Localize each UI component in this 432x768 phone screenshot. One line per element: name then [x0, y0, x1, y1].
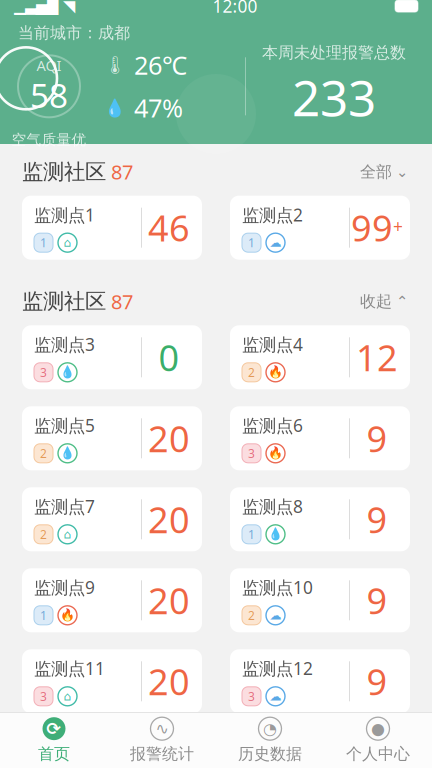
staticText: 当前城市：成都 [18, 23, 130, 43]
staticText: 1 [248, 526, 255, 542]
button[interactable]: 监测点5 [22, 406, 202, 470]
staticText: ⟳ [46, 719, 61, 738]
staticText: 监测点9 [34, 576, 95, 599]
button[interactable]: 全部 [358, 158, 410, 186]
staticText: + [393, 215, 403, 238]
staticText: 💧 [60, 446, 75, 460]
staticText: 监测社区 [22, 159, 106, 185]
staticText: ⌃ [396, 293, 408, 310]
button[interactable]: 监测点6 [230, 406, 410, 470]
button[interactable]: 监测点9 [22, 568, 202, 632]
staticText: 3 [40, 688, 47, 704]
staticText: ● [371, 720, 385, 738]
staticText: 监测点2 [242, 203, 303, 226]
staticText: ☁ [269, 236, 281, 249]
staticText: 🌡 [104, 55, 126, 75]
staticText: 历史数据 [238, 744, 302, 764]
staticText: 🔥 [268, 365, 283, 379]
staticText: 233 [292, 64, 376, 130]
button[interactable]: 监测点11 [22, 649, 202, 713]
staticText: 报警统计 [130, 744, 194, 764]
staticText: 个人中心 [346, 744, 410, 764]
button[interactable]: 监测点2 [230, 196, 410, 260]
staticText: 3 [40, 364, 47, 380]
staticText: 20 [148, 495, 190, 543]
button[interactable]: ◔ [216, 715, 324, 765]
staticText: 收起 [360, 292, 392, 311]
staticText: 监测点3 [34, 333, 95, 356]
staticText: 💧 [60, 365, 75, 379]
button[interactable]: 收起 [358, 288, 410, 315]
staticText: 2 [40, 445, 47, 461]
staticText: ☁ [269, 689, 281, 703]
staticText: 12 [356, 333, 398, 381]
staticText: ⌂ [63, 236, 71, 249]
staticText: 监测点12 [242, 657, 313, 680]
staticText: 2 [40, 526, 47, 542]
staticText: 2 [248, 364, 255, 380]
staticText: 1 [40, 607, 47, 623]
staticText: 监测点1 [34, 203, 95, 226]
staticText: 2 [248, 607, 255, 623]
staticText: 监测社区 [22, 288, 106, 315]
staticText: 9 [366, 576, 387, 624]
staticText: 🔥 [60, 608, 75, 622]
button[interactable]: ● [324, 715, 432, 765]
staticText: 46 [148, 204, 190, 251]
staticText: 监测点8 [242, 495, 303, 518]
staticText: 监测点4 [242, 333, 303, 356]
staticText: ◥ [63, 0, 75, 15]
staticText: 监测点10 [242, 576, 313, 599]
staticText: ⌄ [396, 163, 408, 180]
button[interactable]: ∿ [108, 715, 216, 765]
staticText: 0 [158, 333, 179, 381]
staticText: 9 [366, 657, 387, 705]
staticText: ⌂ [63, 527, 71, 541]
staticText: 3 [248, 445, 255, 461]
staticText: ⌂ [63, 689, 71, 703]
staticText: 监测点6 [242, 414, 303, 437]
staticText: 全部 [360, 162, 392, 182]
button[interactable]: 监测点10 [230, 568, 410, 632]
staticText: 26℃ [134, 48, 187, 82]
staticText: 3 [248, 688, 255, 704]
staticText: ▁▃▅▇ [14, 0, 58, 14]
staticText: 47% [134, 91, 183, 124]
staticText: 本周未处理报警总数 [262, 43, 406, 62]
staticText: AQI [36, 55, 61, 75]
staticText: 监测点5 [34, 414, 95, 437]
staticText: 监测点7 [34, 495, 95, 518]
button[interactable]: 监测点8 [230, 487, 410, 551]
staticText: ◔ [263, 720, 277, 738]
button[interactable]: 监测点7 [22, 487, 202, 551]
staticText: ☁ [269, 608, 281, 622]
staticText: ∿ [155, 720, 168, 738]
staticText: 💧 [268, 527, 283, 541]
staticText: 🔥 [268, 446, 283, 460]
staticText: 20 [148, 414, 190, 462]
staticText: 99 [351, 204, 393, 251]
button[interactable]: 监测点4 [230, 325, 410, 389]
staticText: 58 [30, 73, 68, 117]
staticText: 监测点11 [34, 657, 105, 680]
staticText: 87 [106, 288, 133, 315]
staticText: 87 [106, 158, 133, 185]
staticText: 空气质量优 [11, 131, 86, 149]
staticText: 1 [40, 235, 47, 251]
staticText: 20 [148, 657, 190, 705]
staticText: 9 [366, 495, 387, 543]
staticText: 12:00 [212, 0, 257, 18]
staticText: 1 [248, 235, 255, 251]
staticText: 💧 [104, 98, 126, 117]
button[interactable]: 监测点1 [22, 196, 202, 260]
button[interactable]: ⟳ [0, 715, 108, 765]
staticText: 9 [366, 414, 387, 462]
staticText: 20 [148, 576, 190, 624]
button[interactable]: 监测点3 [22, 325, 202, 389]
button[interactable]: 监测点12 [230, 649, 410, 713]
staticText: 首页 [38, 744, 70, 764]
